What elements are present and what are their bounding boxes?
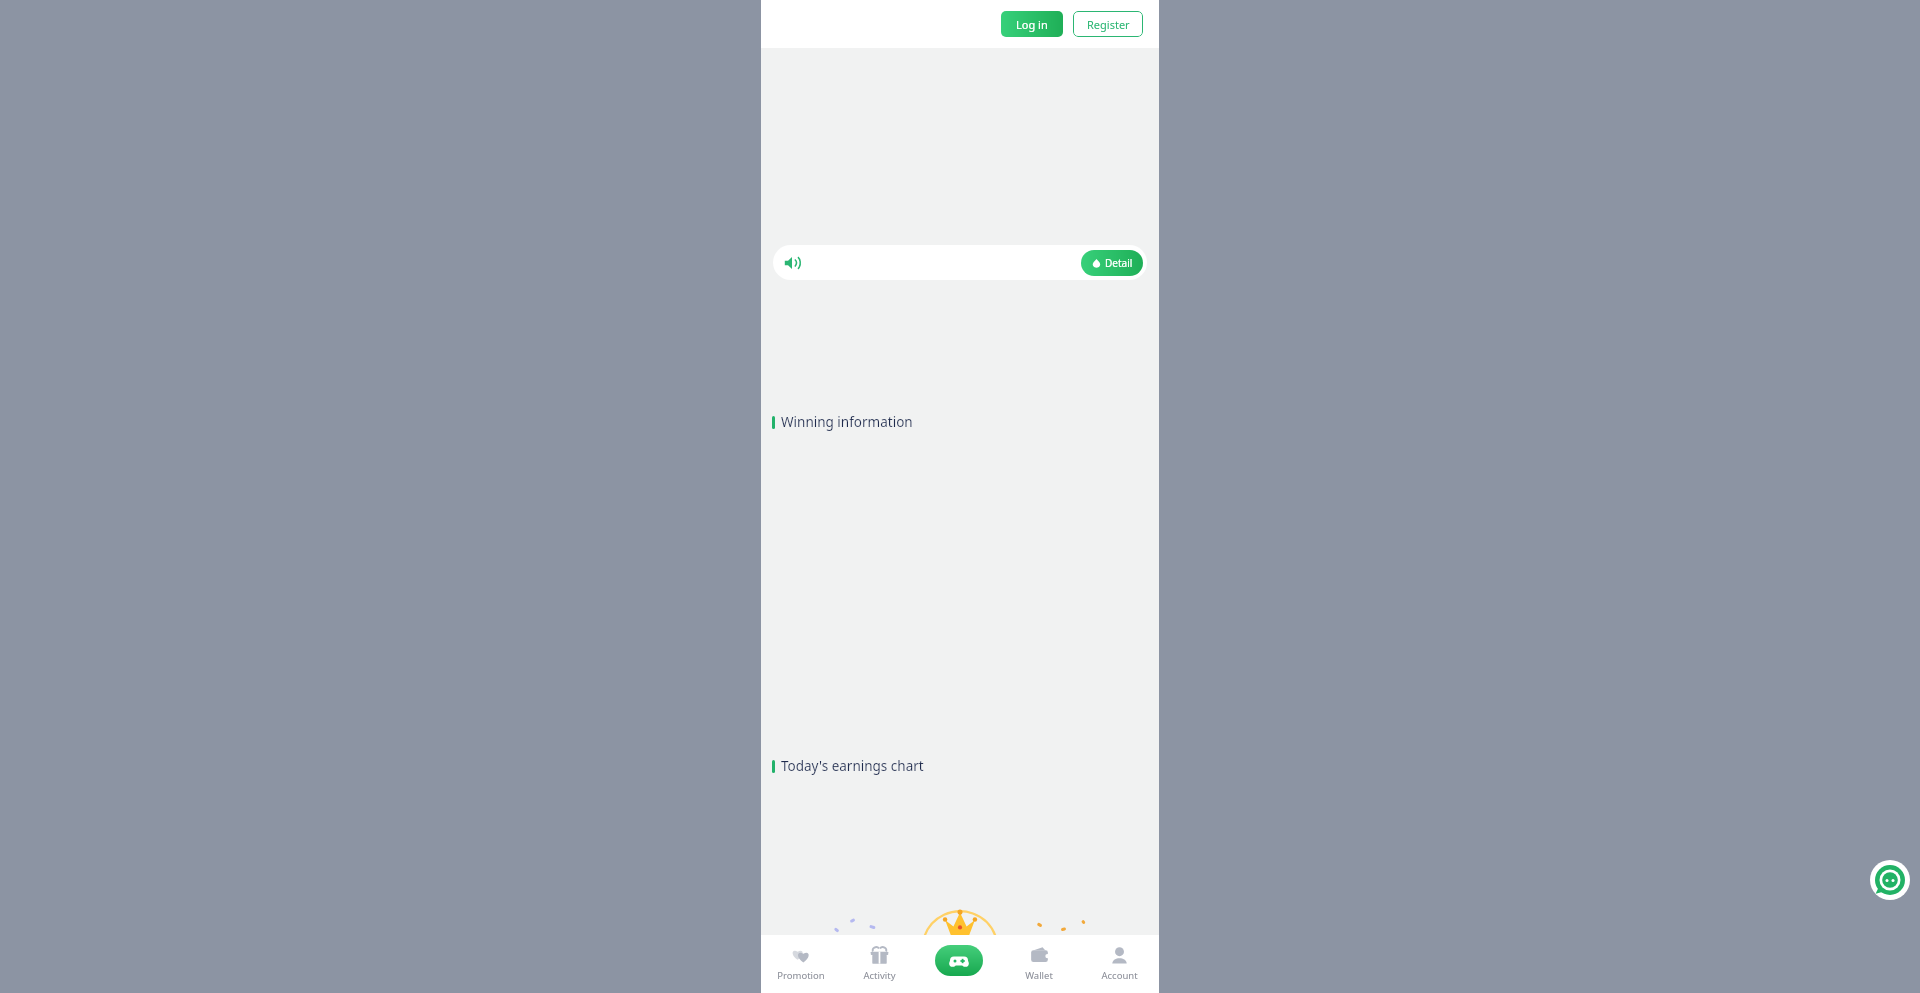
button[interactable]: Detail: [1081, 250, 1143, 276]
staticText: Log in: [1016, 17, 1048, 32]
staticText: Wallet: [1025, 969, 1053, 982]
staticText: Promotion: [777, 969, 825, 982]
staticText: Activity: [863, 969, 896, 982]
staticText: Winning information: [781, 413, 913, 431]
button[interactable]: Activity: [840, 935, 919, 993]
button[interactable]: Announcements: [773, 245, 1147, 280]
button[interactable]: Promotion: [761, 935, 840, 993]
staticText: Account: [1101, 969, 1138, 982]
button[interactable]: Customer service chat: [1870, 860, 1910, 900]
button[interactable]: Wallet: [999, 935, 1079, 993]
other: Announcements: [783, 254, 801, 272]
button[interactable]: Account: [1079, 935, 1159, 993]
button[interactable]: Log in: [1001, 11, 1063, 37]
staticText: Register: [1087, 17, 1130, 32]
staticText: Today's earnings chart: [781, 757, 924, 775]
staticText: Detail: [1105, 256, 1133, 270]
button[interactable]: Games: [935, 945, 983, 976]
button[interactable]: Register: [1073, 11, 1143, 37]
